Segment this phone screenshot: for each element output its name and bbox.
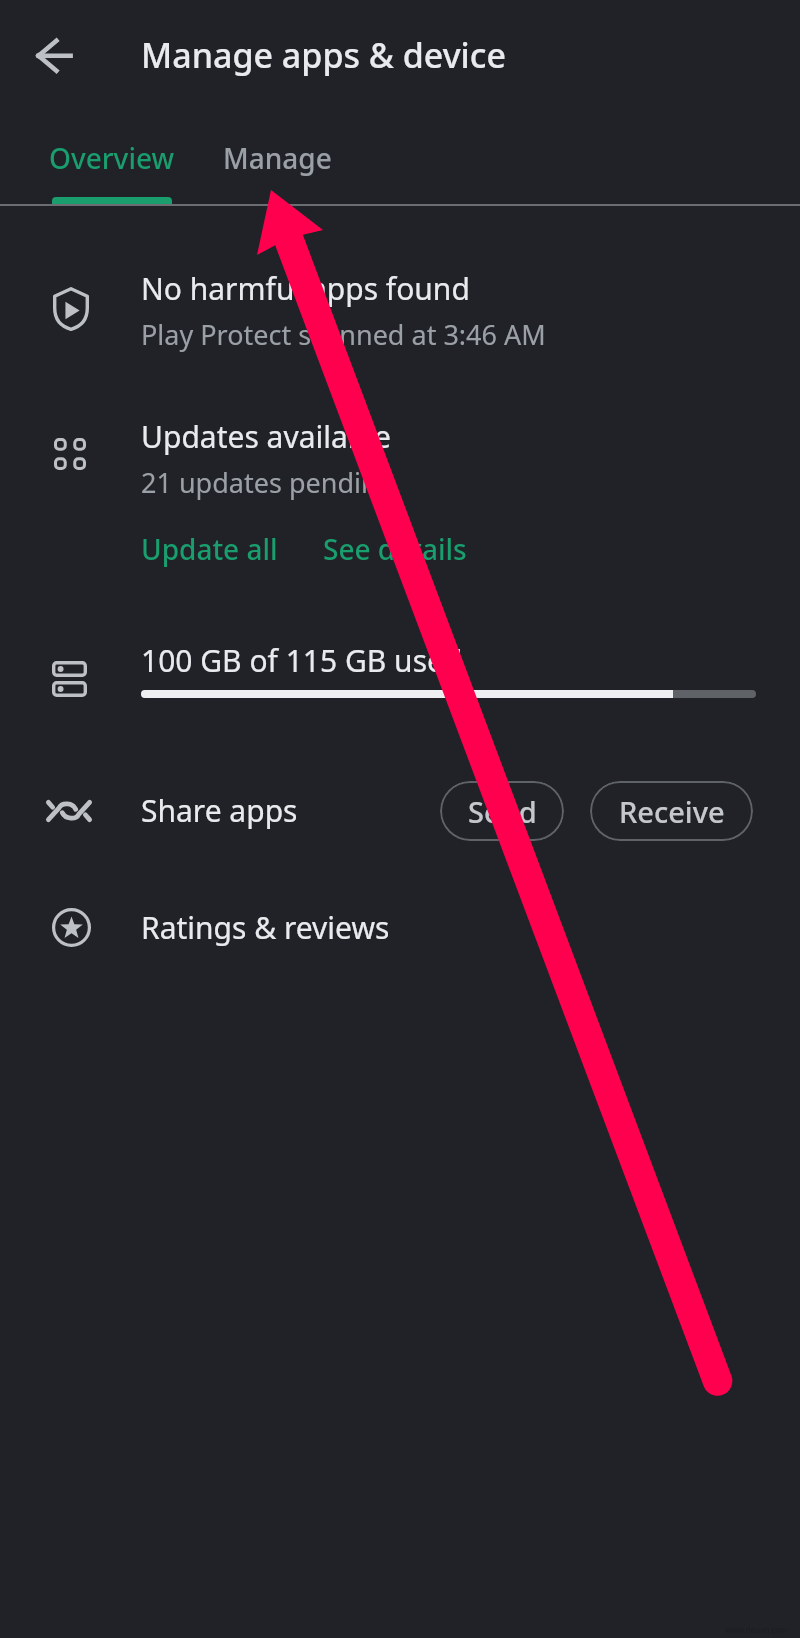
staticText: Ratings & reviews — [141, 907, 390, 948]
button[interactable]: Update all — [141, 530, 278, 568]
staticText: Send — [468, 792, 537, 831]
button[interactable]: Send — [440, 781, 564, 841]
button[interactable]: Receive — [590, 781, 753, 841]
staticText: 100 GB of 115 GB used — [141, 640, 463, 681]
button[interactable]: 100 GB of 115 GB used — [0, 626, 800, 732]
staticText: 21 updates pending — [141, 464, 395, 501]
staticText: Overview — [49, 139, 175, 177]
staticText: Play Protect scanned at 3:46 AM — [141, 316, 546, 353]
staticText: See details — [323, 530, 467, 568]
staticText: Update all — [141, 530, 278, 568]
staticText: Manage apps & device — [141, 32, 506, 78]
button[interactable]: No harmful apps found — [0, 248, 800, 368]
button[interactable]: Manage — [212, 112, 342, 204]
button[interactable]: Overview — [14, 112, 210, 204]
button[interactable]: Back — [15, 17, 95, 97]
staticText: Updates available — [141, 416, 391, 457]
staticText: Share apps — [141, 790, 298, 831]
button[interactable]: See details — [323, 530, 467, 568]
staticText: No harmful apps found — [141, 268, 470, 309]
button[interactable]: Ratings & reviews — [0, 880, 800, 975]
staticText: Receive — [619, 792, 725, 831]
staticText: Manage — [223, 139, 332, 177]
